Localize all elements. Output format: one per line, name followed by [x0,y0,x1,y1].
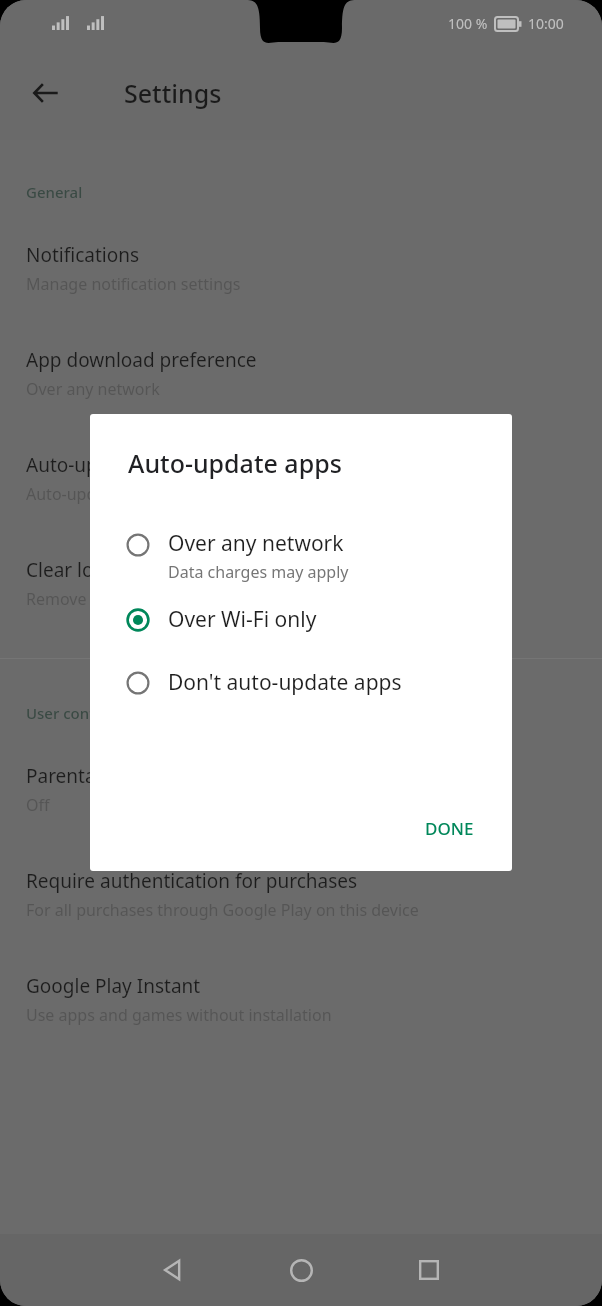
staticText: General [26,182,83,202]
button[interactable]: Google Play Instant [0,973,602,1026]
staticText: Don't auto-update apps [168,668,402,697]
button[interactable]: Require authentication for purchases [0,868,602,921]
button[interactable]: Over Wi-Fi only [90,601,512,638]
staticText: User controls [26,703,122,723]
staticText: 100 % [448,14,488,33]
staticText: Remove the searches you have performed o… [26,588,450,610]
staticText: Parental controls [26,763,178,789]
staticText: Auto-update apps over Wi-Fi only [26,483,275,505]
button[interactable]: App download preference [0,347,602,400]
staticText: Notifications [26,242,140,268]
button[interactable]: DONE [411,808,488,849]
staticText: Over any network [26,378,160,400]
staticText: Off [26,794,50,816]
staticText: Over Wi-Fi only [168,605,317,634]
staticText: Auto-update apps [26,452,186,478]
staticText: DONE [425,817,474,840]
button[interactable]: Back [141,1238,205,1302]
staticText: Over any network [168,529,344,558]
staticText: Use apps and games without installation [26,1004,332,1026]
staticText: Clear local search history [26,557,249,583]
staticText: Require authentication for purchases [26,868,358,894]
button[interactable]: Notifications [0,242,602,295]
button[interactable]: Parental controls [0,763,602,816]
button[interactable]: Over any network [90,525,512,587]
staticText: For all purchases through Google Play on… [26,899,419,921]
button[interactable]: Auto-update apps [0,452,602,505]
button[interactable]: Home [269,1238,333,1302]
button[interactable]: Don't auto-update apps [90,664,512,701]
button[interactable]: Back [18,65,74,121]
staticText: Google Play Instant [26,973,201,999]
button[interactable]: Recent apps [397,1238,461,1302]
button[interactable]: Clear local search history [0,557,602,610]
staticText: Auto-update apps [128,446,342,480]
staticText: Manage notification settings [26,273,241,295]
staticText: App download preference [26,347,257,373]
staticText: Settings [124,76,222,110]
staticText: Data charges may apply [168,561,349,583]
staticText: 10:00 [528,14,564,33]
